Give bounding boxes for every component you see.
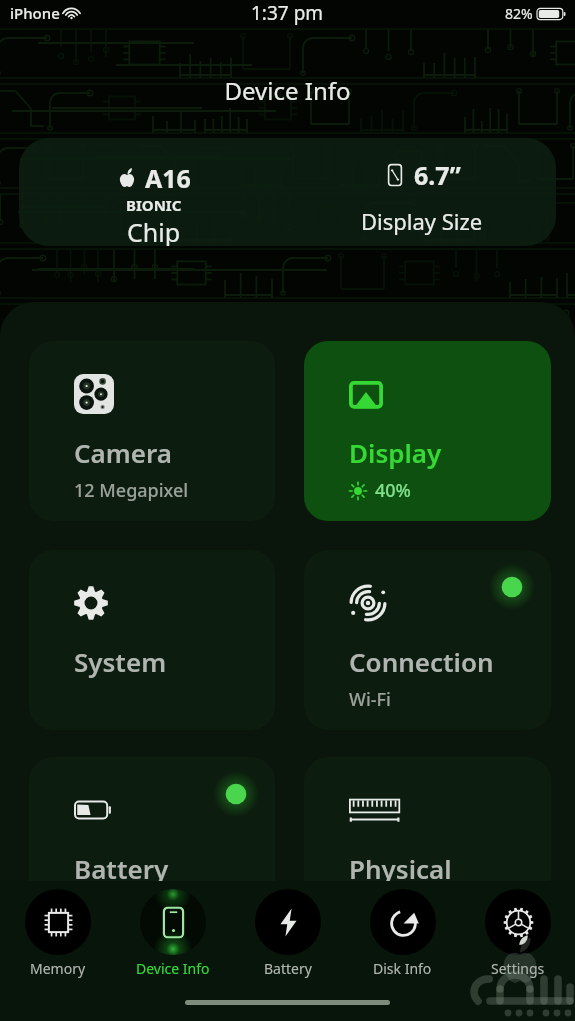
staticText: 82% (505, 4, 533, 23)
staticText: Wi-Fi (349, 687, 391, 712)
button[interactable]: Settings (460, 889, 575, 978)
staticText: Settings (491, 959, 545, 978)
button[interactable]: Camera (29, 341, 275, 521)
staticText: Battery (264, 959, 312, 978)
staticText: Chip (127, 215, 181, 246)
staticText: Disk Info (373, 959, 432, 978)
staticText: 1:37 pm (251, 0, 324, 26)
button[interactable]: Device Info (115, 889, 230, 978)
button[interactable]: Connection (304, 550, 551, 730)
staticText: 6.7” (414, 158, 461, 192)
staticText: Physical (349, 851, 452, 886)
button[interactable]: Battery (230, 889, 345, 978)
button[interactable]: A16 (19, 138, 556, 246)
button[interactable]: System (29, 550, 275, 730)
staticText: iPhone (10, 3, 60, 23)
staticText: Display Size (361, 206, 483, 236)
staticText: BIONIC (126, 195, 182, 215)
staticText: Device Info (136, 959, 210, 978)
staticText: A16 (145, 161, 191, 195)
staticText: Memory (30, 959, 86, 978)
staticText: Display (349, 435, 442, 470)
staticText: Camera (74, 435, 172, 470)
button[interactable]: Display (304, 341, 551, 521)
button[interactable]: Disk Info (345, 889, 460, 978)
staticText: System (74, 644, 167, 679)
button[interactable]: Battery (29, 757, 275, 902)
staticText: Connection (349, 644, 494, 679)
staticText: 12 Megapixel (74, 478, 189, 503)
staticText: Battery (74, 851, 169, 886)
staticText: Device Info (0, 74, 575, 107)
staticText: 40% (375, 478, 411, 503)
button[interactable]: Physical (304, 757, 551, 902)
button[interactable]: Memory (0, 889, 115, 978)
